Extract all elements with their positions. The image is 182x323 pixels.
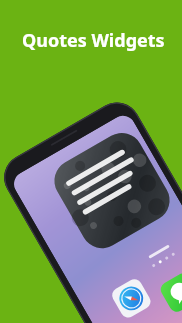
button[interactable]: Quotes Widgets app preview on iPhone bbox=[0, 94, 182, 323]
staticText: Quotes Widgets bbox=[22, 28, 165, 53]
